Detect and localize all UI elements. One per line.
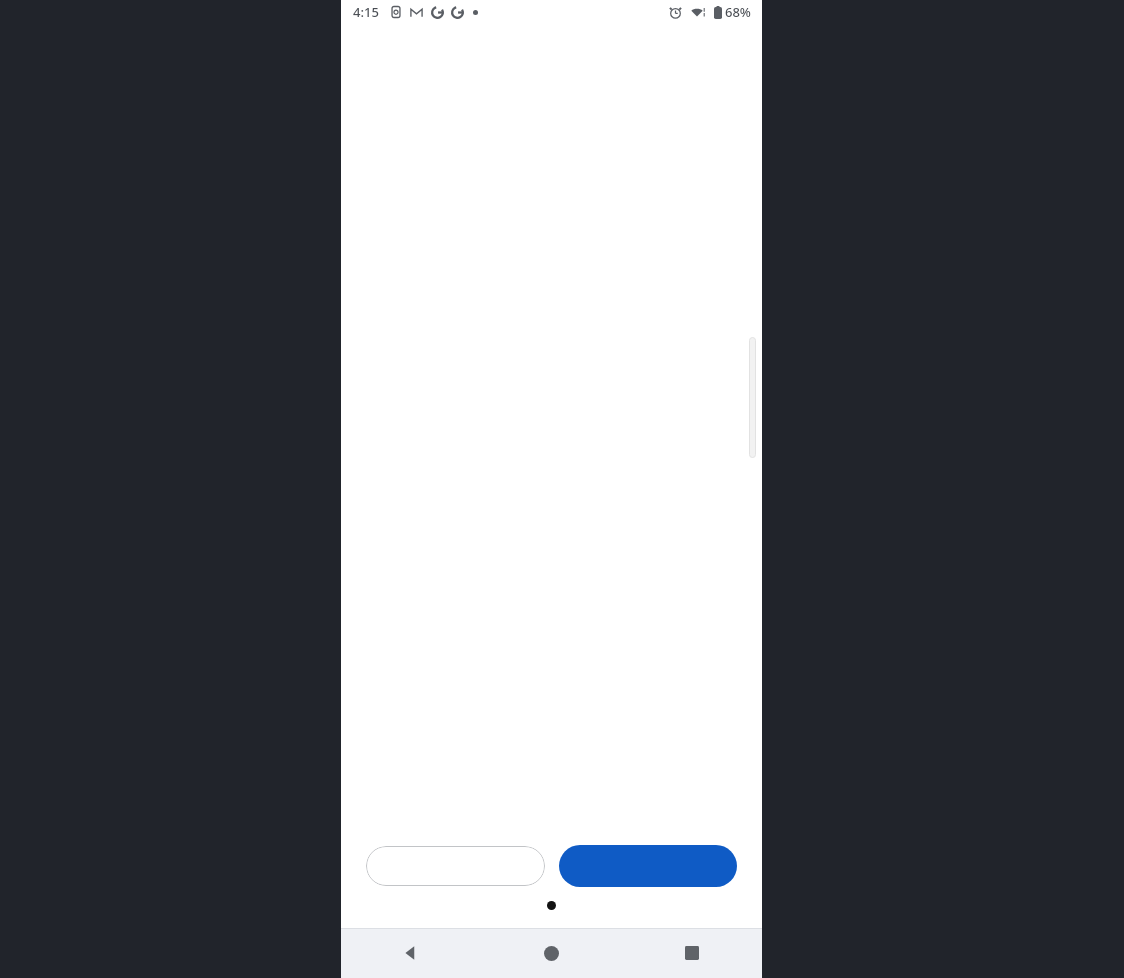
- staticText: 68%: [725, 3, 751, 21]
- staticText: 4:15: [353, 3, 379, 21]
- button[interactable]: Cancel: [366, 846, 545, 886]
- button[interactable]: Home: [481, 928, 622, 978]
- button[interactable]: Continue: [559, 845, 737, 887]
- button[interactable]: Back: [341, 928, 481, 978]
- button[interactable]: Recent apps: [622, 928, 762, 978]
